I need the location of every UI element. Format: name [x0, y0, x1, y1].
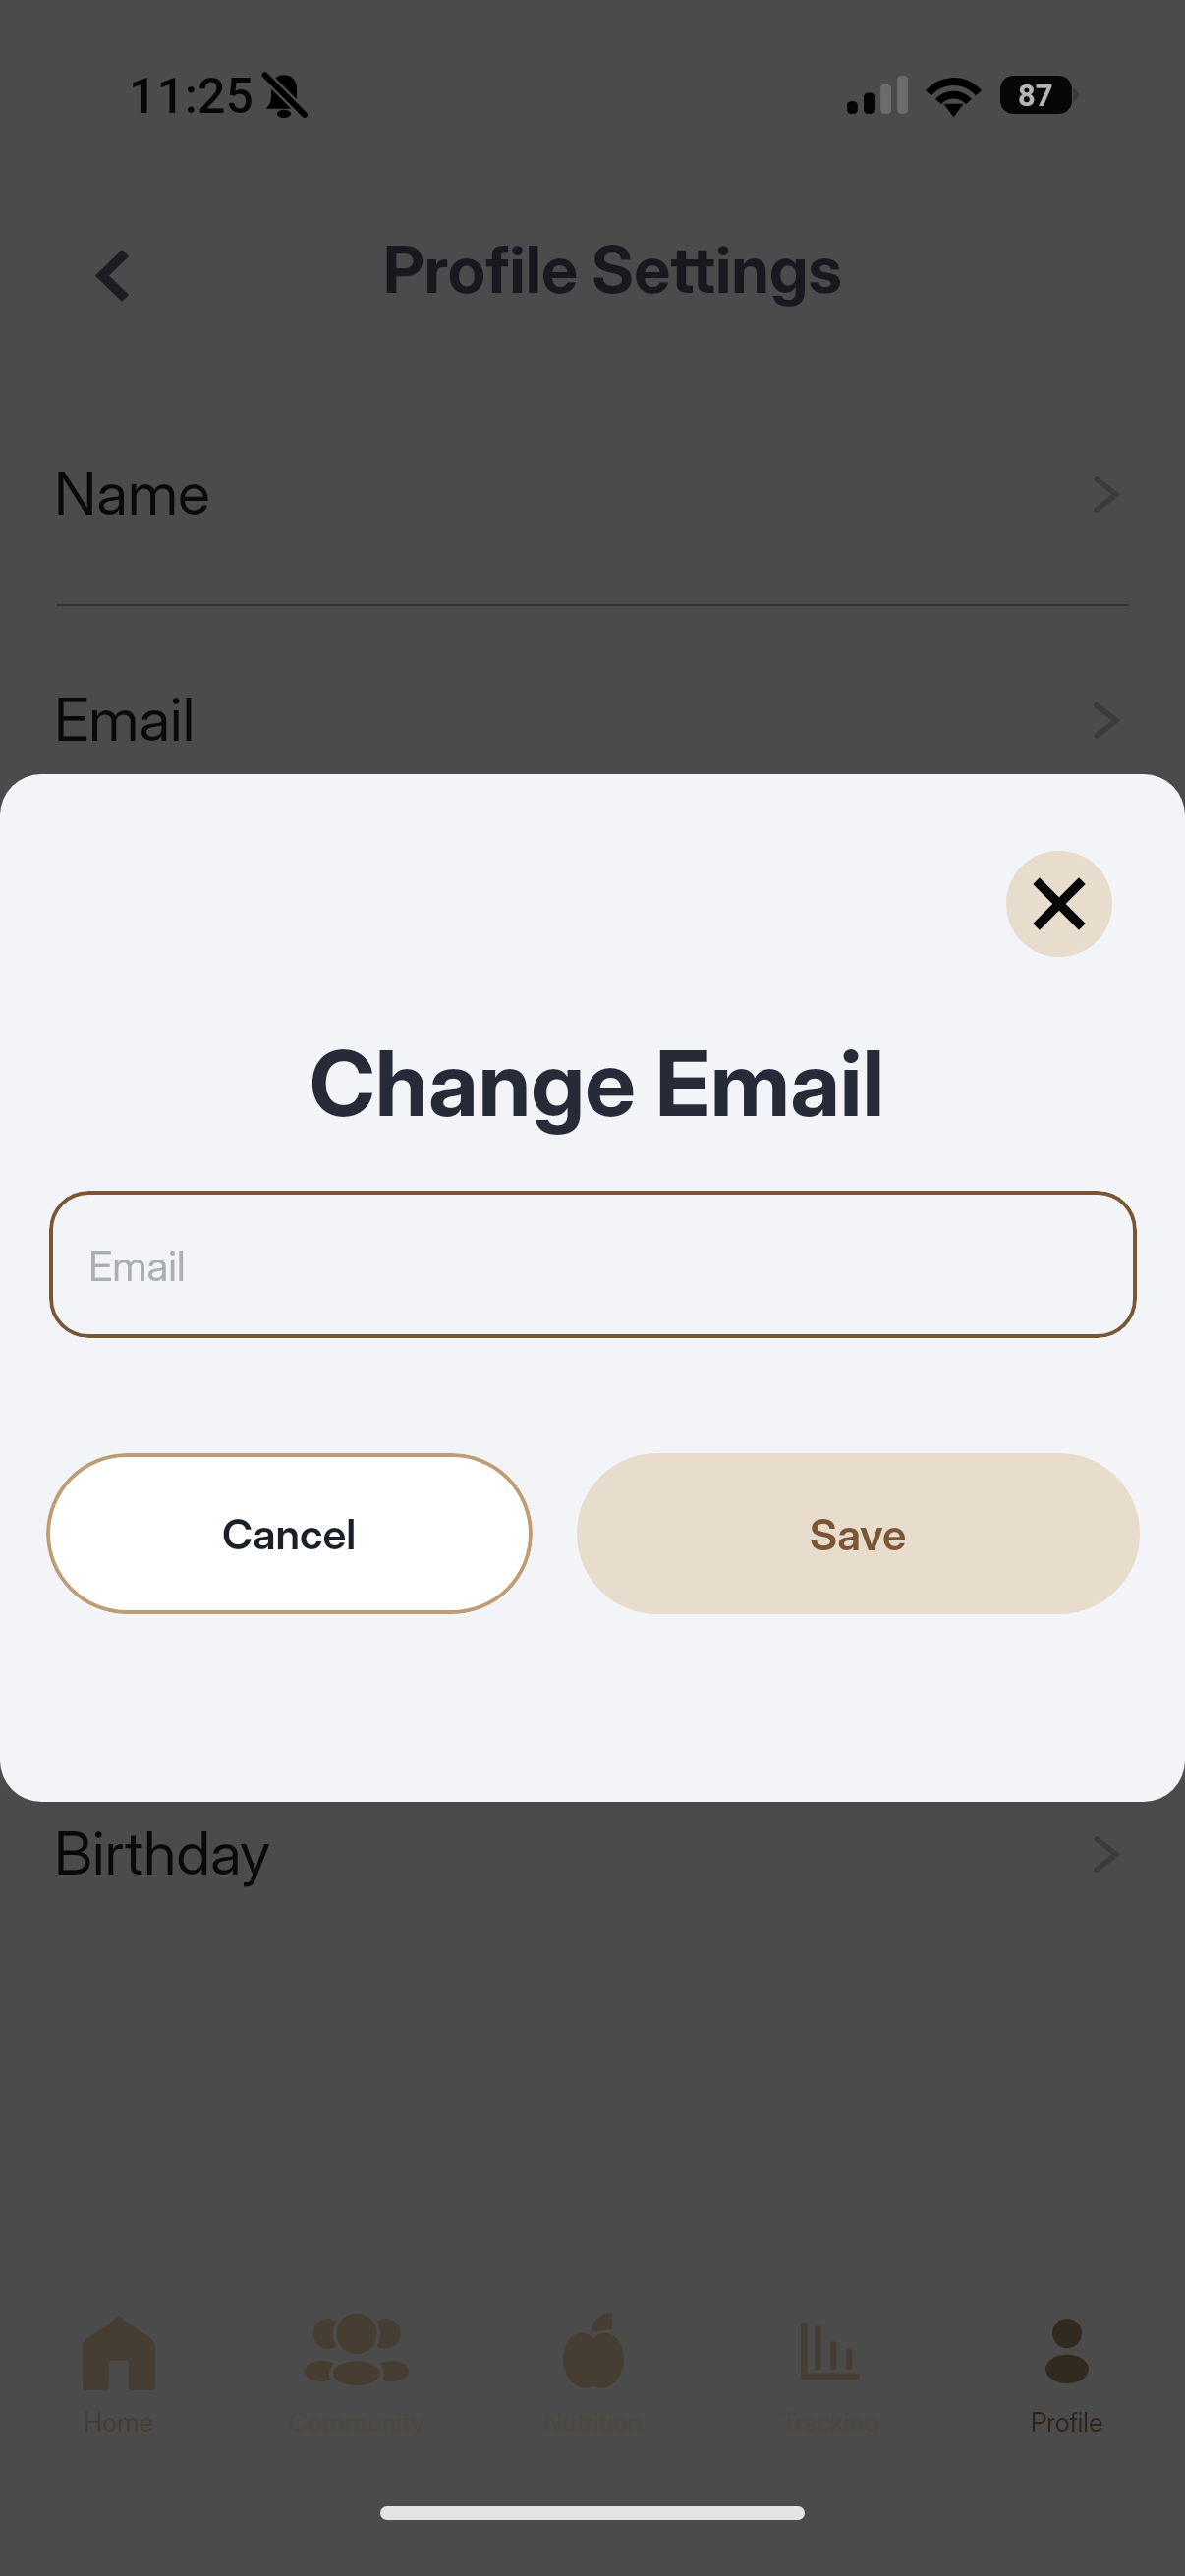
button[interactable]: Email [0, 596, 1185, 820]
staticText: Save [810, 1508, 907, 1560]
staticText: Change Email [310, 1029, 885, 1138]
button[interactable]: Profile [948, 2265, 1185, 2466]
button[interactable]: Birthday [0, 1730, 1185, 1954]
button[interactable]: Cancel [46, 1453, 533, 1614]
button[interactable]: Tracking [711, 2265, 948, 2466]
staticText: Community [289, 2406, 424, 2438]
staticText: Tracking [781, 2406, 879, 2438]
button[interactable]: Name [0, 370, 1185, 594]
button[interactable]: Email [49, 1191, 1137, 1338]
staticText: Birthday [54, 1817, 271, 1889]
staticText: Email [88, 1241, 186, 1291]
button[interactable]: Community [238, 2265, 475, 2466]
button[interactable]: Home [0, 2265, 238, 2466]
staticText: Cancel [222, 1508, 357, 1559]
button[interactable]: Back [41, 204, 183, 346]
staticText: 11:25 [129, 68, 254, 126]
staticText: Profile [1031, 2406, 1103, 2438]
button[interactable]: Save [577, 1453, 1140, 1614]
staticText: Name [54, 457, 210, 530]
staticText: Nutrition [543, 2406, 643, 2438]
staticText: 87 [1018, 78, 1053, 113]
button[interactable]: Nutrition [475, 2265, 711, 2466]
staticText: Email [54, 683, 196, 756]
staticText: Home [84, 2406, 154, 2438]
button[interactable]: Close dialog [1006, 851, 1112, 957]
staticText: Profile Settings [383, 230, 842, 308]
